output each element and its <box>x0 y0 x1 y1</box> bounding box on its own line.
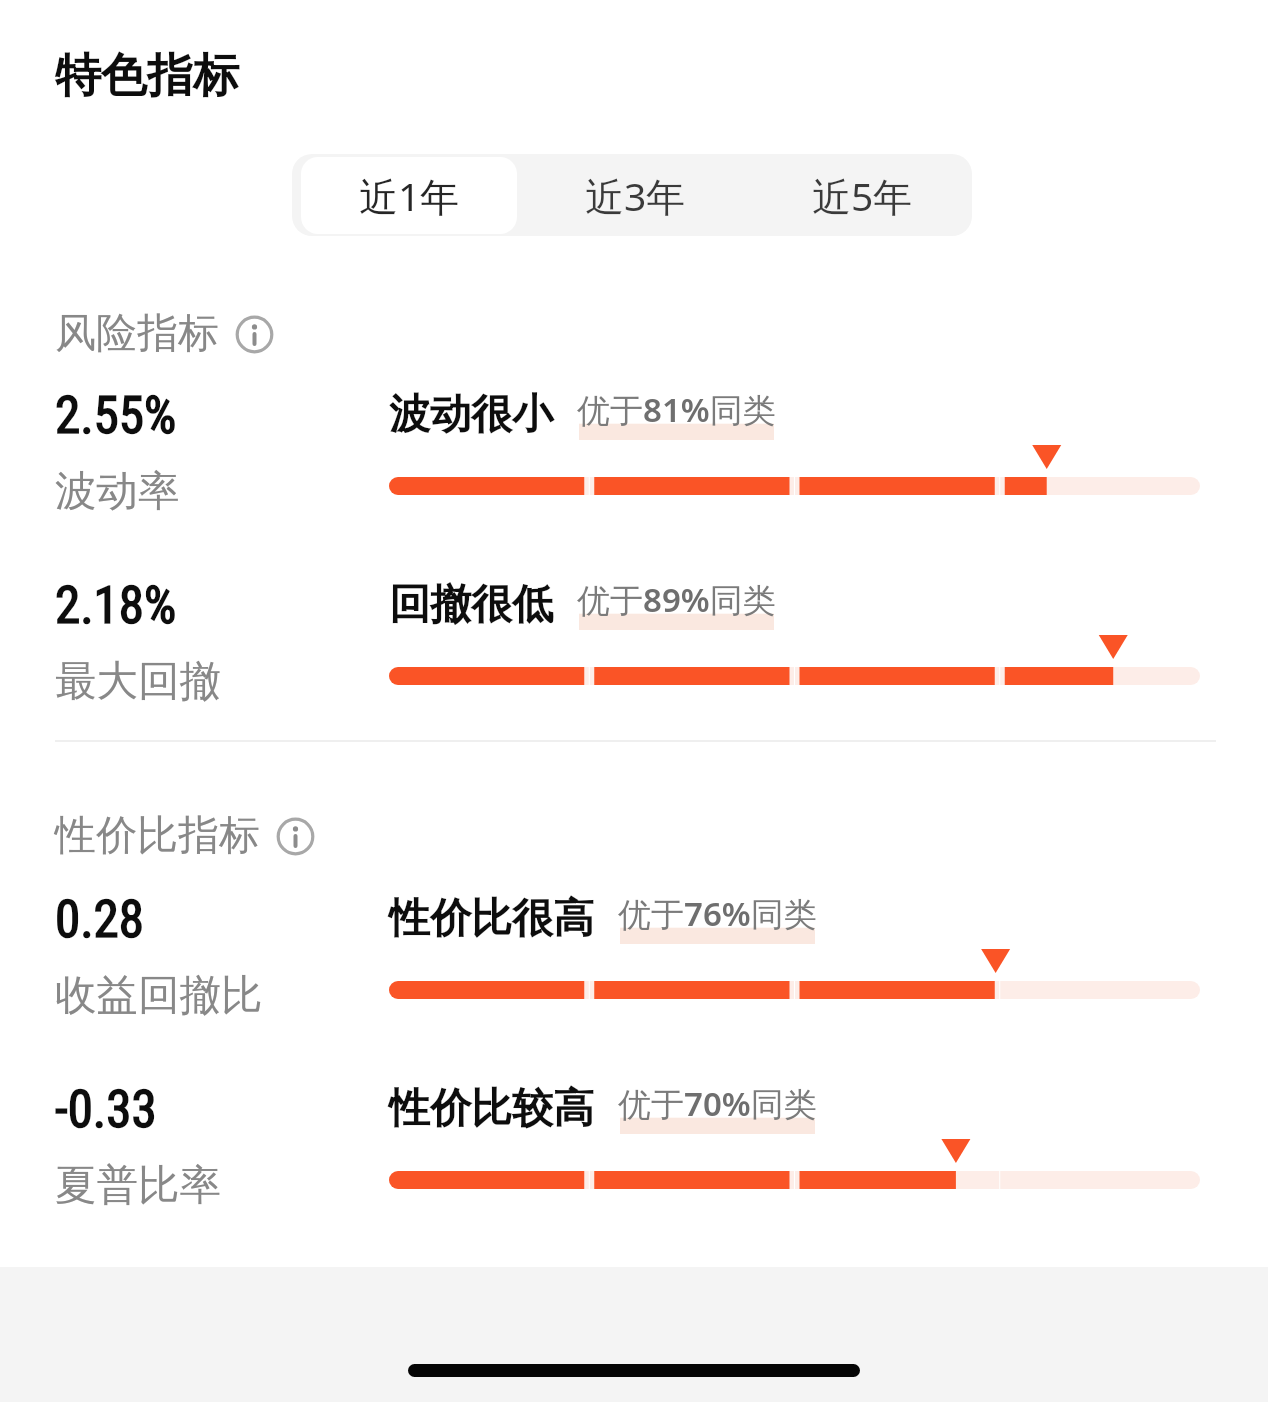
staticText: 风险指标 <box>55 308 219 360</box>
staticText: 夏普比率 <box>55 1159 221 1211</box>
button[interactable]: 风险指标 <box>55 308 274 360</box>
staticText: 性价比很高 <box>389 893 594 945</box>
staticText: 性价比指标 <box>55 810 260 862</box>
staticText: 波动率 <box>55 465 180 517</box>
button[interactable]: 近3年 <box>522 154 749 236</box>
staticText: 近3年 <box>585 169 686 222</box>
staticText: 近1年 <box>359 169 460 222</box>
staticText: 优于89%同类 <box>577 577 776 622</box>
staticText: 特色指标 <box>55 47 239 105</box>
button[interactable] <box>55 882 1216 1012</box>
button[interactable]: 风险指标说明 <box>235 315 274 354</box>
button[interactable]: 近5年 <box>749 154 972 236</box>
staticText: 2.55% <box>55 386 177 446</box>
staticText: 0.28 <box>55 890 144 950</box>
staticText: 最大回撤 <box>55 655 221 707</box>
button[interactable]: 性价比指标说明 <box>276 817 315 856</box>
staticText: 优于76%同类 <box>618 891 817 936</box>
staticText: 性价比较高 <box>389 1083 594 1135</box>
staticText: 优于81%同类 <box>577 387 776 432</box>
staticText: -0.33 <box>55 1080 157 1140</box>
button[interactable] <box>55 378 1216 508</box>
button[interactable] <box>55 1072 1216 1202</box>
staticText: 近5年 <box>812 169 913 222</box>
button[interactable]: 近1年 <box>296 154 522 236</box>
button[interactable]: 性价比指标 <box>55 810 315 862</box>
staticText: 优于70%同类 <box>618 1081 817 1126</box>
staticText: 2.18% <box>55 576 177 636</box>
staticText: 波动很小 <box>389 389 553 441</box>
staticText: 回撤很低 <box>389 579 553 631</box>
staticText: 收益回撤比 <box>55 969 263 1021</box>
button[interactable] <box>55 568 1216 698</box>
